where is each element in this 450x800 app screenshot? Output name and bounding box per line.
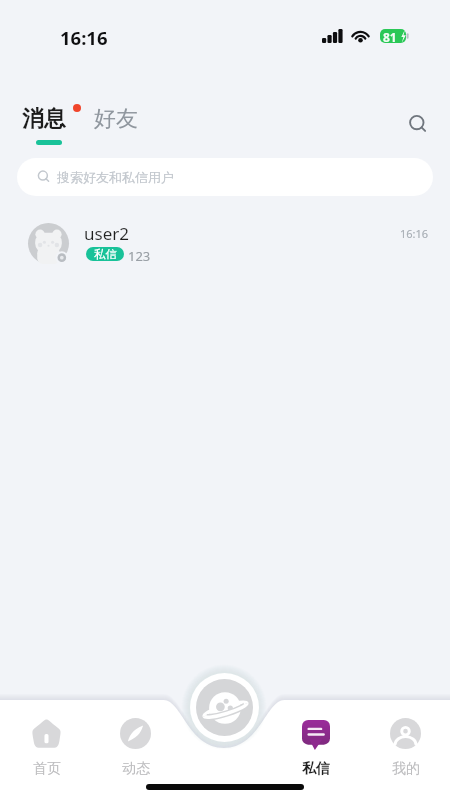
button[interactable]: Explore: [196, 679, 253, 736]
button[interactable]: 首页: [14, 718, 78, 780]
staticText: 我的: [392, 760, 420, 778]
staticText: 消息: [22, 105, 66, 133]
staticText: 16:16: [400, 226, 429, 241]
button[interactable]: 我的: [373, 718, 437, 780]
button[interactable]: 消息: [16, 99, 72, 151]
button[interactable]: 好友: [88, 99, 144, 151]
button[interactable]: Search: [398, 104, 438, 144]
staticText: 81: [383, 29, 397, 43]
staticText: 动态: [122, 760, 150, 778]
staticText: 搜索好友和私信用户: [57, 169, 174, 185]
staticText: 私信: [94, 247, 117, 261]
staticText: 16:16: [60, 25, 108, 50]
staticText: 私信: [302, 760, 330, 778]
button[interactable]: 动态: [103, 718, 167, 780]
button[interactable]: 搜索好友和私信用户: [17, 158, 433, 196]
staticText: user2: [84, 222, 129, 245]
staticText: 123: [128, 247, 151, 265]
staticText: 好友: [94, 105, 138, 133]
staticText: 首页: [33, 760, 61, 778]
button[interactable]: 私信: [283, 718, 347, 780]
button[interactable]: user2: [0, 213, 450, 273]
